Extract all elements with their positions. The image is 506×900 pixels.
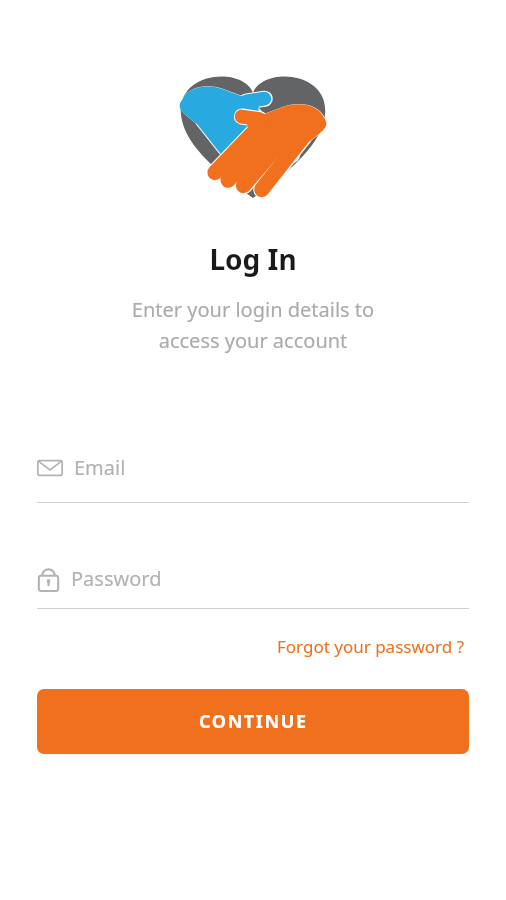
staticText: CONTINUE [199,709,308,734]
staticText: Email [74,454,126,481]
button[interactable]: Password [37,565,469,609]
staticText: Enter your login details to access your … [0,296,506,354]
staticText: Log In [0,240,506,278]
button[interactable]: Forgot your password ? [273,631,469,662]
button[interactable]: Email [37,454,469,503]
staticText: Password [71,565,162,592]
other: App logo [180,66,326,198]
button[interactable]: CONTINUE [37,689,469,754]
staticText: Forgot your password ? [277,635,465,658]
